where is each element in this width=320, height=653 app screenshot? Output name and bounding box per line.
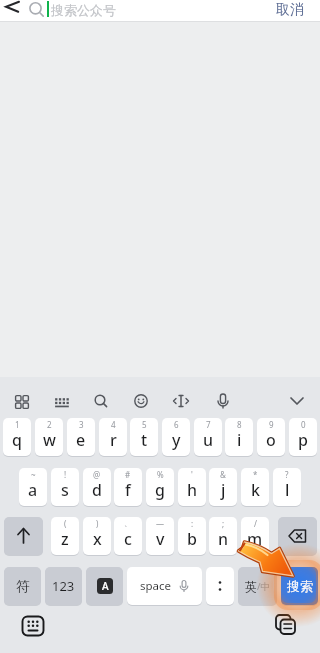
- button[interactable]: ): [83, 517, 111, 555]
- button[interactable]: [45, 386, 77, 418]
- staticText: (: [64, 518, 67, 529]
- button[interactable]: [278, 517, 317, 555]
- button[interactable]: 8: [225, 418, 253, 456]
- staticText: %: [157, 469, 164, 480]
- staticText: /中: [257, 580, 271, 593]
- staticText: A: [102, 579, 109, 593]
- staticText: 5: [142, 419, 147, 430]
- button[interactable]: 7: [194, 418, 222, 456]
- button[interactable]: [271, 610, 301, 640]
- staticText: v: [156, 528, 165, 550]
- staticText: w: [43, 429, 56, 451]
- staticText: 0: [301, 419, 306, 430]
- staticText: 3: [79, 419, 84, 430]
- staticText: j: [221, 479, 226, 501]
- staticText: 搜索: [287, 578, 313, 594]
- button[interactable]: 4: [99, 418, 127, 456]
- staticText: n: [218, 528, 229, 550]
- button[interactable]: @: [83, 468, 111, 506]
- staticText: 英: [245, 579, 257, 594]
- staticText: 符: [16, 578, 30, 595]
- staticText: /: [254, 518, 257, 529]
- button[interactable]: [6, 386, 38, 418]
- button[interactable]: [22, 0, 262, 21]
- staticText: !: [64, 469, 67, 480]
- button[interactable]: !: [51, 468, 79, 506]
- button[interactable]: ~: [19, 468, 47, 506]
- staticText: i: [237, 429, 242, 451]
- staticText: o: [266, 429, 276, 451]
- staticText: p: [298, 429, 308, 451]
- button[interactable]: 符: [4, 567, 41, 605]
- button[interactable]: *: [241, 468, 269, 506]
- staticText: space: [140, 578, 172, 594]
- button[interactable]: [4, 517, 43, 555]
- button[interactable]: 搜索: [281, 567, 318, 605]
- staticText: l: [285, 479, 290, 501]
- staticText: 搜索公众号: [51, 2, 116, 18]
- button[interactable]: ': [178, 468, 206, 506]
- button[interactable]: A: [86, 567, 123, 605]
- button[interactable]: 5: [130, 418, 158, 456]
- staticText: ): [96, 518, 99, 529]
- staticText: c: [124, 528, 132, 550]
- button[interactable]: [165, 385, 197, 417]
- button[interactable]: [2, 0, 24, 22]
- staticText: u: [203, 429, 214, 451]
- button[interactable]: ;: [209, 517, 237, 555]
- button[interactable]: /: [241, 517, 269, 555]
- button[interactable]: [206, 567, 234, 605]
- button[interactable]: space: [127, 567, 202, 605]
- staticText: @: [93, 469, 101, 480]
- staticText: ?: [285, 469, 289, 480]
- staticText: 6: [174, 419, 179, 430]
- staticText: #: [125, 469, 131, 480]
- staticText: —: [156, 518, 164, 529]
- staticText: b: [187, 528, 197, 550]
- button[interactable]: [85, 385, 117, 417]
- staticText: h: [187, 479, 198, 501]
- staticText: 2: [47, 419, 52, 430]
- staticText: q: [12, 429, 22, 451]
- button[interactable]: #: [114, 468, 142, 506]
- staticText: 取消: [276, 1, 304, 19]
- staticText: ;: [222, 518, 225, 529]
- button[interactable]: ?: [273, 468, 301, 506]
- staticText: y: [172, 429, 181, 451]
- staticText: 9: [269, 419, 274, 430]
- button[interactable]: [125, 385, 157, 417]
- staticText: :: [191, 518, 194, 529]
- button[interactable]: [207, 385, 239, 417]
- button[interactable]: 英: [238, 567, 277, 605]
- button[interactable]: %: [146, 468, 174, 506]
- staticText: &: [220, 469, 226, 480]
- staticText: 1: [15, 419, 20, 430]
- button[interactable]: 0: [289, 418, 317, 456]
- staticText: *: [253, 469, 258, 480]
- button[interactable]: &: [209, 468, 237, 506]
- staticText: z: [61, 528, 69, 550]
- button[interactable]: 1: [3, 418, 31, 456]
- button[interactable]: (: [51, 517, 79, 555]
- button[interactable]: —: [146, 517, 174, 555]
- button[interactable]: 6: [162, 418, 190, 456]
- button[interactable]: [281, 385, 313, 417]
- staticText: t: [141, 429, 148, 451]
- staticText: a: [28, 479, 38, 501]
- button[interactable]: [18, 611, 48, 641]
- button[interactable]: 3: [67, 418, 95, 456]
- staticText: 8: [237, 419, 242, 430]
- button[interactable]: :: [178, 517, 206, 555]
- staticText: f: [125, 479, 131, 501]
- button[interactable]: 9: [257, 418, 285, 456]
- staticText: s: [61, 479, 69, 501]
- staticText: g: [155, 479, 165, 501]
- staticText: 4: [111, 419, 116, 430]
- staticText: r: [110, 429, 117, 451]
- staticText: 7: [206, 419, 211, 430]
- button[interactable]: 取消: [266, 0, 314, 19]
- button[interactable]: 、: [114, 517, 142, 555]
- button[interactable]: 2: [35, 418, 63, 456]
- button[interactable]: 123: [45, 567, 82, 605]
- staticText: k: [251, 479, 260, 501]
